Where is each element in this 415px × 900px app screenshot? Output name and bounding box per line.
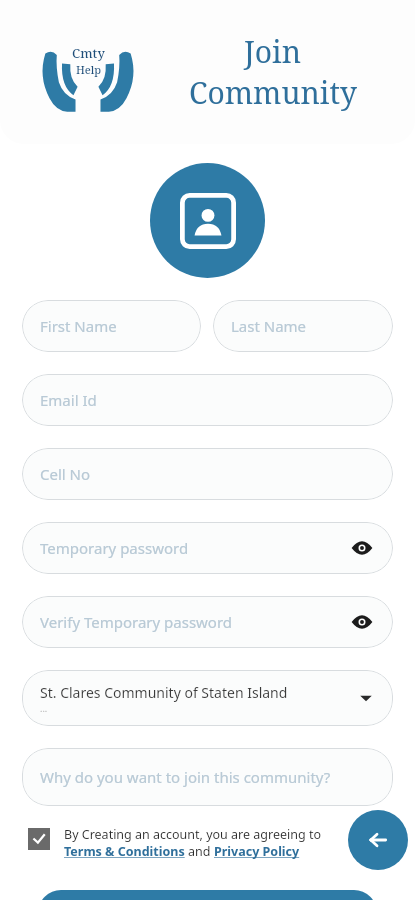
button[interactable]: Email Id bbox=[22, 374, 393, 426]
button[interactable]: St. Clares Community of Staten Island bbox=[22, 670, 393, 726]
staticText: Last Name bbox=[231, 316, 307, 336]
staticText: ... bbox=[40, 702, 48, 714]
other: Agree to terms bbox=[28, 828, 50, 850]
button[interactable]: Why do you want to join this community? bbox=[22, 748, 393, 806]
button[interactable]: Show password bbox=[349, 609, 375, 635]
button[interactable]: Agree to terms bbox=[28, 826, 321, 860]
button[interactable]: Profile photo bbox=[150, 163, 265, 278]
button[interactable]: Back bbox=[348, 810, 408, 870]
staticText: Temporary password bbox=[40, 538, 189, 558]
button[interactable]: Terms & Conditions bbox=[64, 843, 188, 860]
staticText: Cmty bbox=[72, 44, 105, 62]
button[interactable]: Cell No bbox=[22, 448, 393, 500]
button[interactable]: Verify Temporary password bbox=[22, 596, 393, 648]
staticText: Verify Temporary password bbox=[40, 612, 233, 632]
staticText: Help bbox=[76, 62, 102, 77]
button[interactable]: Show password bbox=[349, 535, 375, 561]
button[interactable] bbox=[38, 890, 377, 900]
staticText: Join bbox=[244, 31, 301, 72]
button[interactable]: First Name bbox=[22, 300, 201, 352]
staticText: Email Id bbox=[40, 390, 97, 410]
staticText: Why do you want to join this community? bbox=[40, 767, 331, 787]
staticText: By Creating an account, you are agreeing… bbox=[64, 826, 321, 843]
staticText: Community bbox=[189, 72, 357, 113]
button[interactable]: Last Name bbox=[213, 300, 393, 352]
other: Open community list bbox=[357, 689, 375, 707]
button[interactable]: Privacy Policy bbox=[214, 843, 300, 860]
staticText: and bbox=[188, 843, 214, 860]
button[interactable]: Temporary password bbox=[22, 522, 393, 574]
staticText: St. Clares Community of Staten Island bbox=[40, 683, 288, 702]
staticText: First Name bbox=[40, 316, 117, 336]
staticText: Cell No bbox=[40, 464, 91, 484]
